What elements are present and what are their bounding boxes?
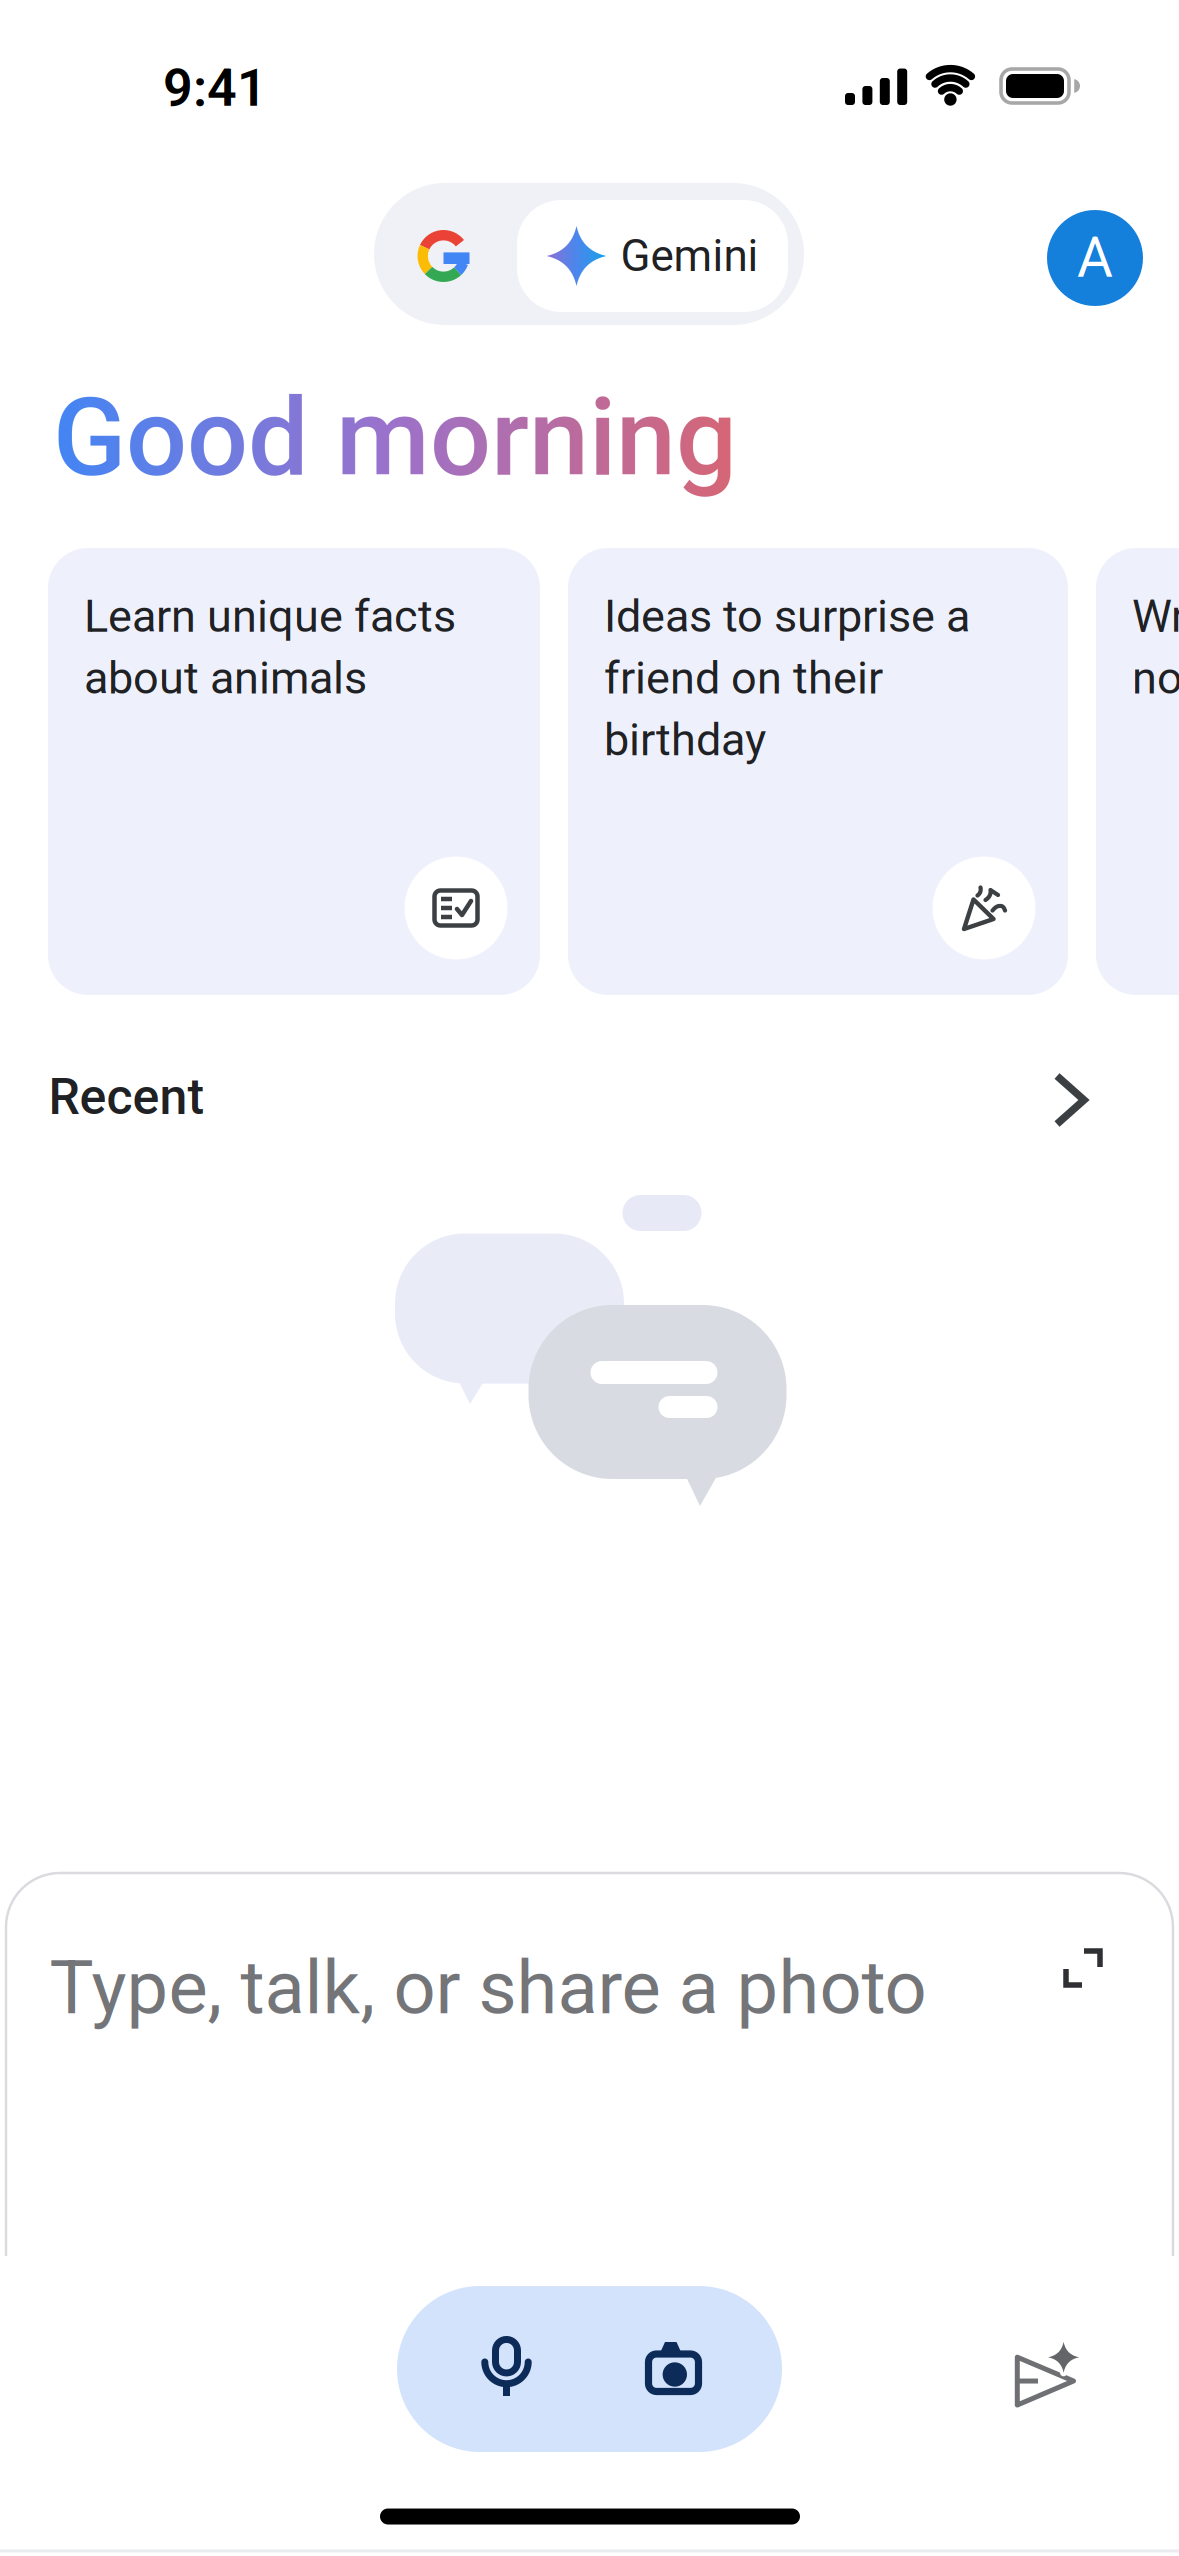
button[interactable]: Type, talk, or share a photo [49, 1933, 969, 2043]
button[interactable]: Write a thank you note for a friend [1096, 548, 1179, 995]
staticText: Learn unique facts about animals [84, 590, 456, 704]
button[interactable]: Ideas to surprise a friend on their birt… [568, 548, 1068, 995]
button[interactable]: Show all recent chats [1046, 1070, 1094, 1130]
button[interactable]: Learn unique facts about animals [48, 548, 540, 995]
staticText: Gemini [620, 230, 758, 282]
staticText: Ideas to surprise a friend on their birt… [604, 590, 970, 766]
button[interactable]: Open camera [618, 2298, 728, 2438]
button[interactable]: Google Search mode [372, 185, 515, 327]
staticText: Recent [48, 1068, 204, 1126]
button[interactable]: Send [1005, 2330, 1085, 2410]
button[interactable]: Gemini mode [517, 200, 788, 312]
button[interactable]: Voice input [451, 2298, 561, 2438]
staticText: Type, talk, or share a photo [49, 1945, 926, 2031]
button[interactable]: Account [1047, 210, 1143, 306]
button[interactable]: Expand input [1051, 1936, 1115, 2000]
staticText: 9:41 [163, 57, 267, 118]
staticText: Write a thank you note for a friend [1132, 590, 1179, 704]
staticText: A [1077, 226, 1113, 290]
